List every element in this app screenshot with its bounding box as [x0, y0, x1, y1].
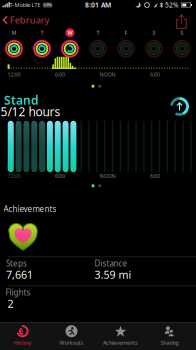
button[interactable]: Day F [116, 28, 136, 59]
staticText: NOON [99, 172, 115, 180]
staticText: Distance [94, 258, 127, 269]
staticText: Workouts [59, 339, 83, 346]
button[interactable]: February [2, 14, 50, 26]
staticText: VPN [43, 2, 51, 8]
staticText: 5/12 hours [0, 103, 60, 119]
staticText: 6:00 [55, 71, 65, 78]
staticText: Stand [4, 92, 39, 108]
staticText: Sharing [160, 339, 178, 346]
staticText: T [96, 29, 99, 36]
staticText: 3.59 mi [94, 267, 131, 282]
button[interactable]: Day S [144, 28, 164, 59]
button[interactable]: Heart Month achievement [7, 221, 39, 255]
staticText: 6:00 [150, 71, 160, 78]
button[interactable]: Achievements [97, 322, 143, 348]
staticText: Achievements [3, 204, 56, 214]
staticText: 7,661 [6, 267, 33, 282]
staticText: F [124, 29, 127, 36]
staticText: M [11, 29, 16, 36]
staticText: 6:00 [150, 172, 160, 180]
button[interactable]: Day S [172, 28, 192, 59]
staticText: Flights [5, 287, 30, 298]
staticText: 12:00 [7, 71, 20, 78]
staticText: Achievements [103, 339, 138, 346]
staticText: S [152, 29, 155, 36]
button[interactable]: History [0, 322, 45, 348]
staticText: 6:00 [55, 172, 65, 180]
staticText: 2 [7, 296, 13, 311]
staticText: 8:01 AM [85, 1, 111, 9]
button[interactable]: Day W [60, 28, 80, 59]
staticText: February [10, 14, 50, 26]
staticText: T-Mobile [9, 1, 30, 8]
staticText: T [40, 29, 43, 36]
staticText: NOON [99, 71, 115, 78]
button[interactable]: Sharing [146, 322, 192, 348]
button[interactable]: Day T [88, 28, 108, 59]
staticText: W [67, 29, 72, 36]
staticText: Steps [6, 258, 27, 269]
staticText: History [13, 339, 31, 346]
button[interactable]: Day M [4, 28, 24, 59]
button[interactable]: Share [176, 14, 187, 29]
button[interactable]: Workouts [48, 322, 94, 348]
staticText: LTE [31, 1, 40, 8]
staticText: S [180, 29, 183, 36]
button[interactable]: Day T [32, 28, 52, 59]
staticText: 12:00 [7, 172, 20, 180]
staticText: 52% [165, 1, 179, 9]
